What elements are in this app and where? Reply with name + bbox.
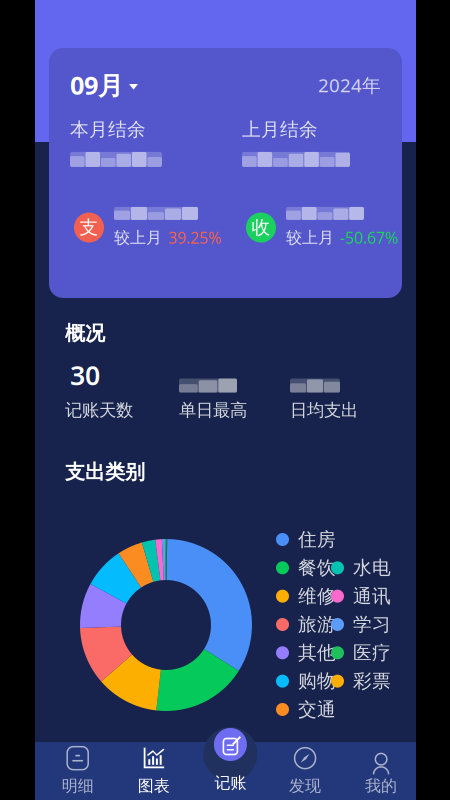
staticText: 维修 xyxy=(298,585,336,608)
staticText: 收 xyxy=(251,216,270,239)
staticText: 购物 xyxy=(298,670,336,693)
staticText: 图表 xyxy=(138,776,170,796)
staticText: 明细 xyxy=(62,776,94,796)
staticText: 支 xyxy=(79,216,98,239)
staticText: 39.25% xyxy=(168,227,221,248)
staticText: 交通 xyxy=(298,698,336,721)
staticText: 医疗 xyxy=(353,641,391,664)
staticText: 较上月 xyxy=(114,228,162,247)
staticText: 2024年 xyxy=(318,73,381,97)
button[interactable]: 09月 xyxy=(70,68,138,102)
staticText: 日均支出 xyxy=(290,400,358,421)
staticText: 彩票 xyxy=(353,670,391,693)
button[interactable]: 记账 xyxy=(193,728,268,798)
staticText: 概况 xyxy=(65,321,105,346)
staticText: 09月 xyxy=(70,68,123,102)
staticText: 较上月 xyxy=(286,228,334,247)
button[interactable]: 我的 xyxy=(343,742,419,800)
staticText: 发现 xyxy=(289,776,321,796)
staticText: 记账天数 xyxy=(65,400,133,421)
staticText: 旅游 xyxy=(298,613,336,636)
button[interactable]: 明细 xyxy=(40,742,116,800)
staticText: 水电 xyxy=(353,556,391,579)
staticText: 30 xyxy=(70,357,100,393)
staticText: 上月结余 xyxy=(242,118,318,141)
staticText: 本月结余 xyxy=(70,118,146,141)
staticText: 住房 xyxy=(298,528,336,551)
staticText: 其他 xyxy=(298,641,336,664)
staticText: 学习 xyxy=(353,613,391,636)
staticText: 记账 xyxy=(214,773,246,793)
staticText: 通讯 xyxy=(353,585,391,608)
staticText: -50.67% xyxy=(340,227,398,248)
staticText: 我的 xyxy=(365,776,397,796)
staticText: 餐饮 xyxy=(298,556,336,579)
staticText: 支出类别 xyxy=(65,460,145,484)
button[interactable]: 图表 xyxy=(116,742,192,800)
staticText: 单日最高 xyxy=(179,400,247,421)
button[interactable]: 发现 xyxy=(267,742,343,800)
